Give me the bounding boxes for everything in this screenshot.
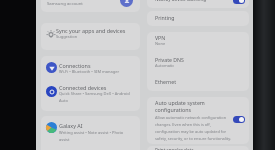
staticText: Nearby device scanning	[155, 0, 207, 2]
button[interactable]: Connections	[41, 56, 140, 82]
button[interactable]: Samsung account	[41, 0, 140, 12]
staticText: Printing	[155, 14, 175, 21]
staticText: Samsung account	[47, 0, 83, 6]
staticText: Automatic	[155, 63, 175, 68]
button[interactable]: Auto update system configurations toggle	[233, 116, 245, 123]
button[interactable]: Ethernet	[147, 74, 249, 91]
button[interactable]: Galaxy AI	[41, 116, 140, 150]
staticText: Connections	[59, 62, 91, 69]
staticText: Galaxy AI	[59, 122, 83, 129]
staticText: Allow automatic network configuration ch…	[155, 115, 232, 141]
staticText: Writing assist • Note assist • Photo ass…	[59, 130, 124, 142]
staticText: Wi-Fi • Bluetooth • SIM manager	[59, 69, 120, 74]
staticText: Sync your apps and devices	[56, 27, 126, 34]
button[interactable]: Printing	[147, 11, 249, 26]
button[interactable]: Connected devices	[41, 82, 140, 111]
staticText: Print spooler data	[155, 147, 194, 150]
button[interactable]: Sync your apps and devices	[41, 23, 140, 50]
button[interactable]: Nearby device scanning	[147, 0, 249, 8]
staticText: VPN	[155, 34, 166, 41]
staticText: Connected devices	[59, 84, 107, 91]
button[interactable]: Private DNS	[147, 53, 249, 74]
staticText: Quick Share • Samsung DeX • Android Auto	[59, 91, 130, 103]
staticText: Auto update system configurations	[155, 99, 205, 114]
button[interactable]: Auto update system configurations	[147, 97, 249, 144]
staticText: None	[155, 41, 166, 46]
button[interactable]: VPN	[147, 32, 249, 53]
staticText: Suggestion	[56, 34, 78, 39]
staticText: Private DNS	[155, 56, 184, 63]
staticText: Ethernet	[155, 78, 177, 85]
button[interactable]: Print spooler data	[147, 146, 249, 150]
